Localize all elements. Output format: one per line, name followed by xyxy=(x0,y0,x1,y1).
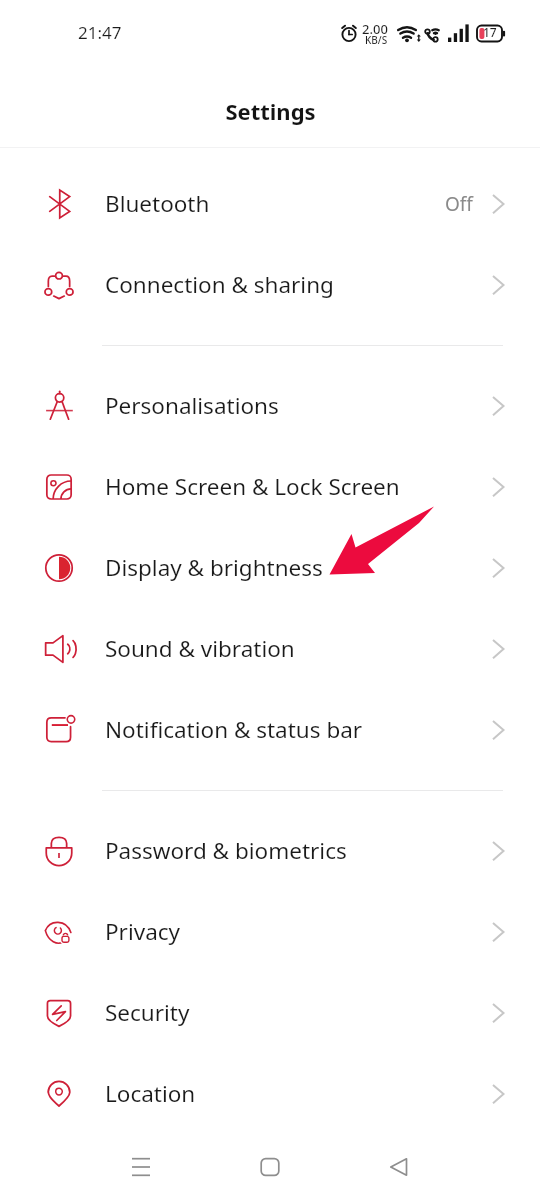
staticText: Connection & sharing xyxy=(105,269,493,300)
staticText: KB/S xyxy=(365,33,388,47)
button[interactable]: Bluetooth xyxy=(0,163,540,244)
button[interactable]: Home xyxy=(246,1143,294,1191)
staticText: Display & brightness xyxy=(105,552,493,583)
staticText: 17 xyxy=(483,24,497,40)
staticText: Password & biometrics xyxy=(105,835,493,866)
staticText: Privacy xyxy=(105,916,493,947)
staticText: Off xyxy=(445,191,473,217)
button[interactable]: Notification & status bar xyxy=(0,689,540,770)
staticText: Settings xyxy=(225,96,316,126)
button[interactable]: Back xyxy=(375,1143,423,1191)
staticText: Sound & vibration xyxy=(105,633,493,664)
button[interactable]: Location xyxy=(0,1053,540,1134)
staticText: Personalisations xyxy=(105,390,493,421)
staticText: Home Screen & Lock Screen xyxy=(105,471,493,502)
button[interactable]: Connection & sharing xyxy=(0,244,540,325)
staticText: Location xyxy=(105,1078,493,1109)
button[interactable]: Password & biometrics xyxy=(0,810,540,891)
staticText: Security xyxy=(105,997,493,1028)
button[interactable]: Sound & vibration xyxy=(0,608,540,689)
staticText: Bluetooth xyxy=(105,188,445,219)
staticText: 2.00 xyxy=(362,20,388,38)
button[interactable]: Privacy xyxy=(0,891,540,972)
button[interactable]: Recent apps xyxy=(117,1143,165,1191)
button[interactable]: Security xyxy=(0,972,540,1053)
button[interactable]: Display & brightness xyxy=(0,527,540,608)
staticText: Notification & status bar xyxy=(105,714,493,745)
button[interactable]: Personalisations xyxy=(0,365,540,446)
staticText: 21:47 xyxy=(78,21,122,44)
button[interactable]: Home Screen & Lock Screen xyxy=(0,446,540,527)
